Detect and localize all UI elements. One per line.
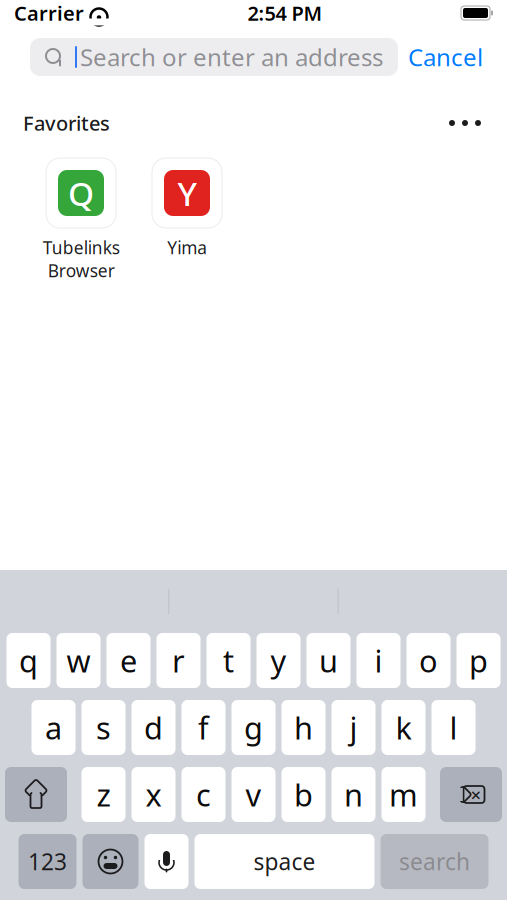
staticText: e <box>120 640 137 681</box>
staticText: g <box>244 707 263 748</box>
button[interactable]: 123 <box>18 834 76 889</box>
staticText: Carrier <box>14 0 84 26</box>
staticText: Search or enter an address <box>80 41 383 73</box>
staticText: Tubelinks Browser <box>42 236 119 282</box>
button[interactable]: Q <box>38 158 124 282</box>
button[interactable]: y <box>256 633 300 688</box>
staticText: j <box>349 707 357 748</box>
button[interactable]: b <box>281 767 325 822</box>
button[interactable]: w <box>56 633 100 688</box>
staticText: 123 <box>28 846 67 876</box>
staticText: Y <box>177 171 196 215</box>
button[interactable]: z <box>81 767 125 822</box>
staticText: × <box>470 782 481 807</box>
staticText: w <box>66 640 90 681</box>
button[interactable]: Delete <box>440 767 502 822</box>
button[interactable]: d <box>131 700 175 755</box>
button[interactable]: f <box>181 700 225 755</box>
button[interactable]: s <box>81 700 125 755</box>
staticText: i <box>374 640 382 681</box>
button[interactable]: n <box>331 767 375 822</box>
button[interactable]: More options <box>438 106 492 140</box>
button[interactable]: Search or enter an address <box>30 38 398 76</box>
button[interactable]: u <box>306 633 350 688</box>
button[interactable]: Shift <box>5 767 67 822</box>
button[interactable]: g <box>231 700 275 755</box>
staticText: l <box>449 707 457 748</box>
button[interactable]: e <box>106 633 150 688</box>
button[interactable]: Cancel <box>398 38 493 76</box>
button[interactable]: Emoji <box>82 834 138 889</box>
staticText: y <box>270 640 286 681</box>
staticText: x <box>145 774 161 815</box>
staticText: Yima <box>167 236 207 259</box>
button[interactable]: v <box>231 767 275 822</box>
staticText: c <box>196 774 211 815</box>
staticText: search <box>399 846 470 876</box>
staticText: k <box>395 707 411 748</box>
staticText: p <box>469 640 488 681</box>
button[interactable]: o <box>406 633 450 688</box>
staticText: u <box>319 640 338 681</box>
button[interactable]: r <box>156 633 200 688</box>
staticText: o <box>419 640 438 681</box>
button[interactable]: l <box>431 700 475 755</box>
staticText: v <box>245 774 261 815</box>
button[interactable]: x <box>131 767 175 822</box>
button[interactable]: h <box>281 700 325 755</box>
button[interactable]: m <box>381 767 425 822</box>
staticText: b <box>294 774 313 815</box>
staticText: 2:54 PM <box>247 0 322 26</box>
button[interactable]: j <box>331 700 375 755</box>
staticText: h <box>294 707 313 748</box>
staticText: a <box>45 707 62 748</box>
staticText: Q <box>68 171 94 215</box>
button[interactable]: Y <box>144 158 230 259</box>
staticText: d <box>144 707 163 748</box>
staticText: Favorites <box>23 110 110 136</box>
staticText: f <box>198 707 209 748</box>
staticText: n <box>344 774 363 815</box>
staticText: z <box>96 774 110 815</box>
button[interactable]: i <box>356 633 400 688</box>
staticText: m <box>389 774 418 815</box>
staticText: s <box>96 707 111 748</box>
staticText: r <box>172 640 185 681</box>
button[interactable]: space <box>194 834 374 889</box>
button[interactable]: k <box>381 700 425 755</box>
button[interactable]: a <box>31 700 75 755</box>
button[interactable]: p <box>456 633 500 688</box>
staticText: space <box>253 846 315 876</box>
staticText: t <box>223 640 234 681</box>
button[interactable]: Dictate <box>144 834 188 889</box>
button[interactable]: q <box>6 633 50 688</box>
staticText: q <box>19 640 38 681</box>
button[interactable]: search <box>380 834 488 889</box>
button[interactable]: c <box>181 767 225 822</box>
staticText: Cancel <box>408 41 483 73</box>
button[interactable]: t <box>206 633 250 688</box>
